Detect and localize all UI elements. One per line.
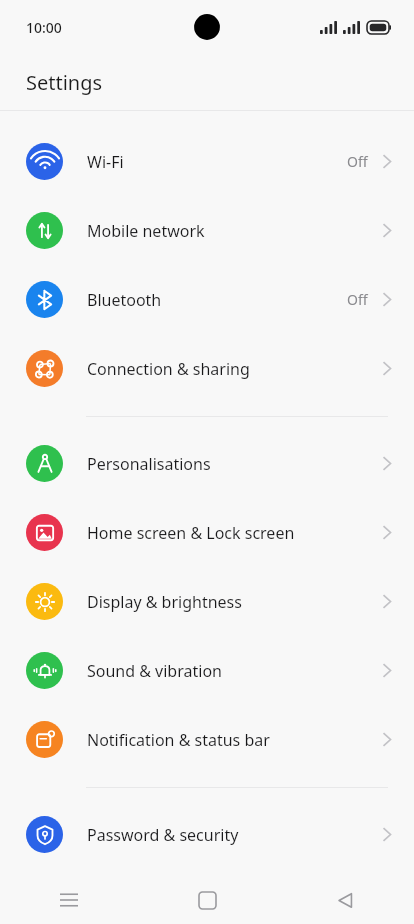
staticText: Home screen & Lock screen	[87, 522, 382, 544]
button[interactable]: Password & security	[0, 800, 414, 869]
button[interactable]: Home	[138, 876, 276, 924]
staticText: Display & brightness	[87, 591, 382, 613]
staticText: 10:00	[26, 18, 62, 37]
staticText: Wi-Fi	[87, 151, 347, 173]
staticText: Off	[347, 290, 368, 309]
staticText: Notification & status bar	[87, 729, 382, 751]
button[interactable]: Home screen & Lock screen	[0, 498, 414, 567]
button[interactable]: Back	[276, 876, 414, 924]
staticText: Settings	[26, 69, 103, 96]
button[interactable]: Mobile network	[0, 196, 414, 265]
button[interactable]: Wi-Fi	[0, 127, 414, 196]
staticText: Bluetooth	[87, 289, 347, 311]
staticText: Personalisations	[87, 453, 382, 475]
staticText: Mobile network	[87, 220, 382, 242]
staticText: Connection & sharing	[87, 358, 382, 380]
button[interactable]: Recent apps	[0, 876, 138, 924]
button[interactable]: Sound & vibration	[0, 636, 414, 705]
button[interactable]: Notification & status bar	[0, 705, 414, 774]
button[interactable]: Personalisations	[0, 429, 414, 498]
staticText: Sound & vibration	[87, 660, 382, 682]
staticText: Off	[347, 152, 368, 171]
staticText: Password & security	[87, 824, 382, 846]
button[interactable]: Connection & sharing	[0, 334, 414, 403]
button[interactable]: Bluetooth	[0, 265, 414, 334]
button[interactable]: Display & brightness	[0, 567, 414, 636]
